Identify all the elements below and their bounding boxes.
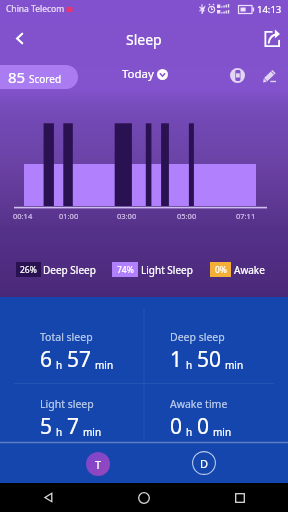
staticText: 01:00	[59, 211, 79, 221]
staticText: min	[83, 425, 102, 439]
staticText: h	[56, 358, 63, 372]
staticText: Deep sleep	[170, 330, 225, 344]
staticText: 0	[170, 412, 183, 441]
staticText: 57	[67, 345, 92, 374]
button[interactable]: Total sleep	[40, 330, 150, 386]
staticText: min	[213, 425, 232, 439]
staticText: Deep Sleep	[43, 263, 96, 277]
staticText: h	[186, 425, 193, 439]
staticText: 50	[197, 345, 222, 374]
button[interactable]: 74%	[112, 262, 138, 277]
button[interactable]: Watch device	[224, 62, 251, 89]
staticText: Light sleep	[40, 397, 94, 411]
staticText: D	[200, 456, 209, 471]
button[interactable]: D	[192, 451, 216, 475]
button[interactable]: Home	[96, 483, 192, 512]
staticText: 03:00	[117, 211, 137, 221]
staticText: h	[56, 425, 63, 439]
staticText: 0	[197, 412, 210, 441]
staticText: Awake time	[170, 397, 228, 411]
staticText: T	[95, 457, 102, 472]
staticText: Sleep	[126, 30, 162, 49]
staticText: h	[186, 358, 193, 372]
staticText: 85	[8, 67, 26, 87]
staticText: 1	[170, 345, 183, 374]
button[interactable]: 0%	[210, 262, 231, 277]
staticText: 74%	[117, 264, 134, 276]
staticText: 05:00	[177, 211, 197, 221]
button[interactable]: Light sleep	[40, 397, 150, 453]
staticText: 26%	[20, 264, 37, 276]
button[interactable]: 26%	[16, 262, 41, 277]
button[interactable]: Deep sleep	[170, 330, 280, 386]
button[interactable]: Today	[122, 66, 168, 82]
button[interactable]: 85	[0, 65, 78, 89]
staticText: Total sleep	[40, 330, 93, 344]
button[interactable]: Recent apps	[192, 483, 288, 512]
staticText: 7	[67, 412, 80, 441]
staticText: min	[95, 358, 114, 372]
staticText: Today	[122, 66, 154, 82]
staticText: 5	[40, 412, 53, 441]
button[interactable]: Back	[0, 19, 38, 57]
button[interactable]: Back	[0, 483, 96, 512]
staticText: Scored	[29, 72, 62, 86]
staticText: 07:11	[236, 211, 256, 221]
staticText: min	[225, 358, 244, 372]
staticText: 00:14	[13, 211, 33, 221]
staticText: Light Sleep	[141, 263, 193, 277]
button[interactable]: Edit	[256, 62, 283, 89]
staticText: 0%	[215, 264, 227, 276]
button[interactable]: Share	[250, 19, 288, 57]
staticText: China Telecom	[6, 3, 65, 15]
staticText: Awake	[234, 263, 265, 277]
staticText: 6	[40, 345, 53, 374]
staticText: 14:13	[257, 3, 282, 16]
button[interactable]: Awake time	[170, 397, 280, 453]
button[interactable]: T	[86, 452, 110, 476]
